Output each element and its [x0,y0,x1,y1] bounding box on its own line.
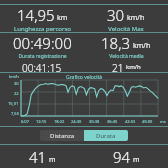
staticText: Distanza [50,132,75,140]
staticText: 24:30 [71,119,82,124]
staticText: Durata registrazione [18,53,67,60]
staticText: 14,95 [17,5,55,25]
staticText: m [133,155,140,165]
staticText: Velocità media [109,53,144,60]
staticText: 22 [14,91,19,96]
button[interactable]: Distanza [40,130,84,141]
staticText: 36:45 [107,119,118,124]
button[interactable]: Durata [84,130,128,141]
staticText: 18:22 [54,119,65,124]
staticText: Velocità Max [108,25,144,32]
staticText: km [57,13,68,23]
staticText: ms [160,119,166,124]
staticText: Durata [96,132,116,140]
button[interactable]: 30 [84,5,168,32]
staticText: km/h [126,63,141,71]
staticText: km/h [127,13,145,23]
button[interactable]: 41 [0,145,84,168]
staticText: 30:38 [89,119,100,124]
staticText: 00:41:15 [22,61,62,72]
staticText: 18,3 [101,33,131,53]
button[interactable]: 14,95 [0,5,84,32]
staticText: 6:07 [21,119,29,124]
staticText: m [49,155,56,165]
button[interactable]: 18,3 [84,33,168,72]
staticText: 41 [29,147,47,167]
staticText: 42:53 [125,119,136,124]
staticText: 94 [113,147,131,167]
staticText: 7,65 [11,111,19,116]
staticText: Grafico velocità [66,74,103,81]
staticText: 15,01 [8,101,19,106]
button[interactable]: Grafico velocità [0,73,168,126]
button[interactable]: 94 [84,145,168,168]
staticText: km/h [9,74,19,79]
staticText: Lunghezza percorso [14,25,71,32]
staticText: 30 [14,81,19,86]
staticText: 21 [112,61,124,72]
staticText: 49:00 [142,119,153,124]
staticText: 30 [107,5,125,25]
staticText: 00:49:00 [13,33,72,53]
staticText: km/h [133,41,151,51]
button[interactable]: 00:49:00 [0,33,84,72]
staticText: 12:15 [36,119,47,124]
